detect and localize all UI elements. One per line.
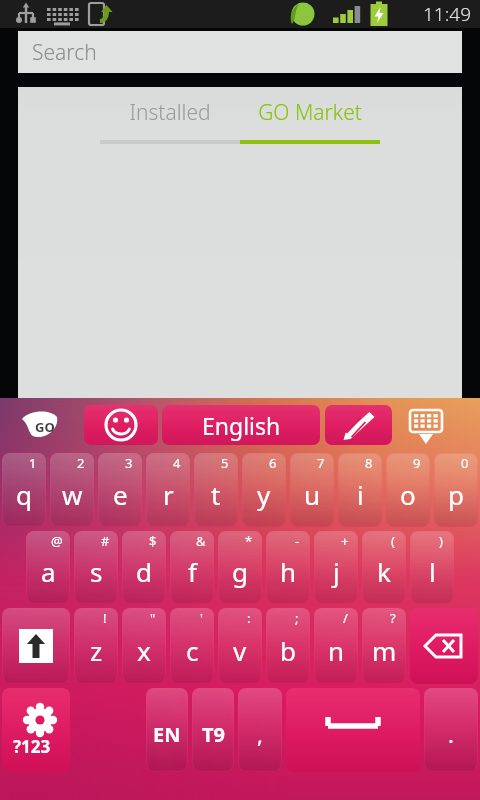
button[interactable]: Installed [100,87,240,137]
staticText: + [341,532,349,550]
staticText: GO [35,418,55,436]
staticText: o [400,477,416,512]
staticText: 9 [413,454,421,472]
staticText: 8 [365,454,373,472]
button[interactable]: m [362,608,406,684]
button[interactable]: a [26,531,70,604]
button[interactable]: GO Keyboard menu [8,399,74,451]
staticText: - [295,532,300,550]
staticText: n [328,633,345,668]
button[interactable]: Shift [2,608,70,684]
button[interactable]: l [410,531,454,604]
staticText: u [304,477,321,512]
staticText: 11:49 [423,1,472,27]
staticText: EN [153,721,181,748]
staticText: j [333,554,340,589]
button[interactable]: g [218,531,262,604]
staticText: & [196,532,206,550]
staticText: 4 [173,454,181,472]
button[interactable]: . [424,688,478,772]
button[interactable]: Emoji [84,405,158,445]
staticText: h [280,554,297,589]
staticText: : [247,609,251,627]
staticText: 7 [317,454,325,472]
button[interactable]: p [434,453,478,527]
staticText: p [448,477,464,512]
staticText: Installed [129,98,211,127]
staticText: b [280,633,296,668]
button[interactable]: f [170,531,214,604]
staticText: 3 [125,454,133,472]
button[interactable]: u [290,453,334,527]
staticText: * [245,532,253,550]
button[interactable]: Handwriting [325,405,392,445]
staticText: GO Market [258,98,362,127]
staticText: i [357,477,364,512]
button[interactable]: b [266,608,310,684]
staticText: Search [32,38,97,67]
staticText: # [101,532,110,550]
staticText: 5 [221,454,229,472]
staticText: s [90,554,103,589]
button[interactable]: o [386,453,430,527]
button[interactable]: English [162,405,320,445]
staticText: a [41,554,56,589]
button[interactable]: x [122,608,166,684]
staticText: e [113,477,128,512]
staticText: " [150,609,156,627]
staticText: 0 [461,454,469,472]
button[interactable]: Space [286,688,420,772]
staticText: l [429,554,436,589]
button[interactable]: T9 [192,688,234,772]
button[interactable]: j [314,531,358,604]
button[interactable]: Backspace [410,608,478,684]
button[interactable]: w [50,453,94,527]
staticText: g [232,554,248,589]
button[interactable]: k [362,531,406,604]
button[interactable]: q [2,453,46,527]
button[interactable]: c [170,608,214,684]
staticText: q [16,477,32,512]
staticText: , [257,719,263,749]
button[interactable]: r [146,453,190,527]
staticText: ; [295,609,299,627]
staticText: v [233,633,247,668]
button[interactable]: h [266,531,310,604]
staticText: ! [103,609,107,627]
staticText: y [257,477,271,512]
staticText: m [372,633,397,668]
button[interactable]: s [74,531,118,604]
button[interactable]: d [122,531,166,604]
button[interactable]: n [314,608,358,684]
button[interactable]: t [194,453,238,527]
staticText: $ [149,532,157,550]
button[interactable]: Symbols and settings [2,688,70,772]
staticText: 1 [29,454,37,472]
staticText: T9 [202,721,225,748]
button[interactable]: EN [146,688,188,772]
button[interactable]: y [242,453,286,527]
button[interactable]: GO Market [240,87,380,137]
staticText: English [202,410,281,441]
staticText: 6 [269,454,277,472]
staticText: t [211,477,221,512]
staticText: ? [390,609,396,627]
staticText: ' [200,609,203,627]
staticText: / [343,609,348,627]
staticText: @ [51,532,63,550]
button[interactable]: , [238,688,282,772]
staticText: 2 [77,454,85,472]
staticText: f [188,554,197,589]
button[interactable]: v [218,608,262,684]
staticText: k [377,554,391,589]
staticText: . [448,719,454,749]
button[interactable]: Hide keyboard [400,399,452,451]
staticText: c [186,633,199,668]
button[interactable]: e [98,453,142,527]
staticText: d [136,554,152,589]
button[interactable]: z [74,608,118,684]
button[interactable]: Search [18,31,462,73]
staticText: ) [439,532,443,550]
button[interactable]: i [338,453,382,527]
staticText: w [62,477,83,512]
